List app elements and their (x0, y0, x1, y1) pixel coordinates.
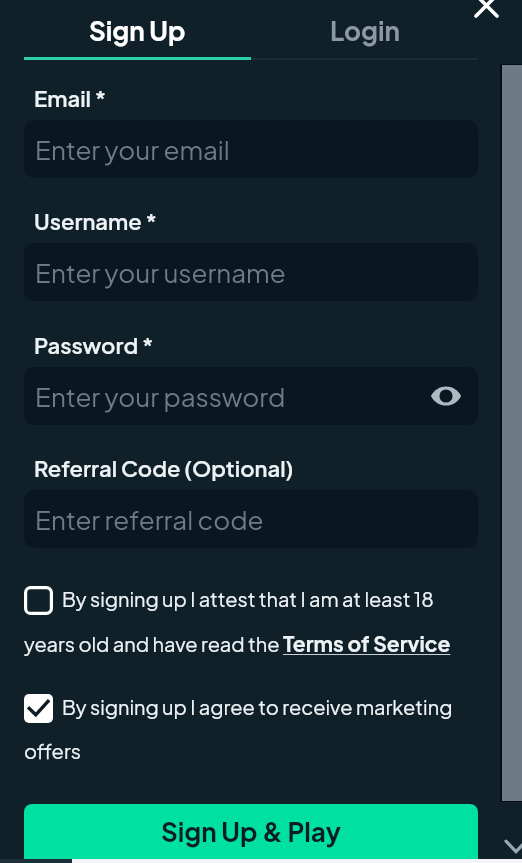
button[interactable]: Enter your username (24, 243, 478, 301)
staticText: years old and have read the Terms of Ser… (24, 630, 451, 656)
button[interactable]: Login (251, 0, 478, 60)
staticText: Enter referral code (35, 503, 264, 536)
button[interactable]: Sign Up (24, 0, 251, 60)
button[interactable]: Show password (425, 375, 467, 417)
button[interactable] (24, 582, 478, 660)
staticText: By signing up I agree to receive marketi… (62, 694, 453, 719)
staticText: Sign Up & Play (161, 815, 342, 848)
button[interactable]: Enter your password (24, 367, 478, 425)
button[interactable]: Close (467, 0, 505, 24)
staticText: offers (24, 738, 81, 763)
staticText: Enter your username (35, 256, 286, 289)
staticText: Enter your password (35, 380, 286, 413)
staticText: Enter your email (35, 133, 230, 166)
other: Scroll down (498, 828, 522, 863)
button[interactable]: Enter referral code (24, 490, 478, 548)
button[interactable]: Sign Up & Play (24, 804, 478, 863)
staticText: Password * (34, 331, 154, 359)
staticText: Email * (34, 84, 107, 112)
staticText: Referral Code (Optional) (34, 454, 294, 482)
button[interactable]: Enter your email (24, 120, 478, 178)
staticText: Username * (34, 207, 157, 235)
button[interactable] (24, 690, 478, 768)
staticText: By signing up I attest that I am at leas… (62, 586, 434, 611)
staticText: Login (330, 14, 400, 47)
staticText: Sign Up (89, 14, 186, 47)
